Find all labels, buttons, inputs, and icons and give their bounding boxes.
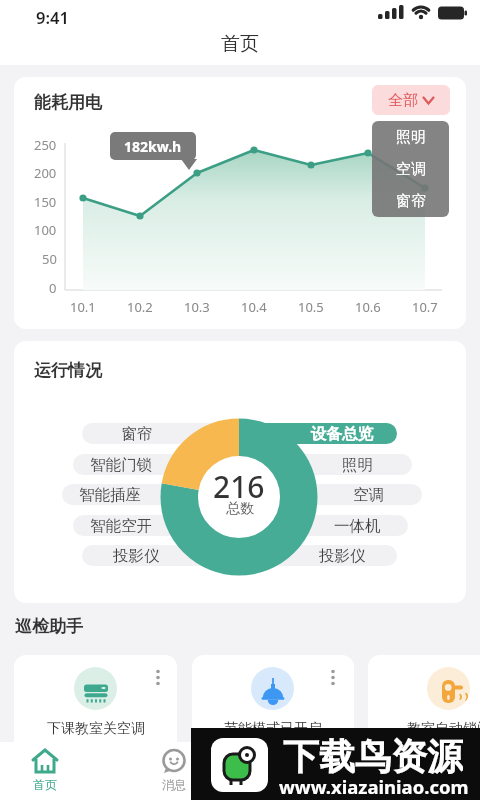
staticText: 设备总览 (311, 424, 373, 444)
button[interactable]: 节能模式已开启 (192, 655, 354, 755)
staticText: 智能插座 (79, 485, 141, 505)
button[interactable] (236, 545, 397, 566)
button[interactable] (82, 545, 242, 566)
staticText: 100 (34, 221, 57, 237)
button[interactable] (73, 515, 242, 536)
staticText: 消息 (162, 777, 186, 792)
staticText: 投影仪 (113, 546, 160, 566)
staticText: 全部 (388, 91, 418, 110)
button[interactable] (236, 515, 408, 536)
staticText: 窗帘 (396, 192, 426, 211)
button[interactable]: 消息 (146, 744, 202, 798)
button[interactable]: 下课教室关空调 (14, 655, 177, 755)
staticText: 运行情况 (34, 360, 102, 381)
button[interactable]: 全部 (372, 85, 450, 115)
button[interactable] (62, 484, 242, 505)
button[interactable] (236, 454, 412, 475)
staticText: 下载鸟资源 (283, 734, 463, 776)
button[interactable]: 窗帘 (372, 185, 449, 217)
staticText: 能耗用电 (34, 92, 102, 113)
button[interactable]: 空调 (372, 153, 449, 185)
button[interactable]: 首页 (17, 744, 73, 798)
staticText: 照明 (396, 128, 426, 147)
staticText: 节能模式已开启 (224, 720, 322, 738)
staticText: 50 (42, 250, 57, 266)
staticText: 10.5 (298, 298, 324, 316)
button[interactable] (82, 423, 242, 444)
staticText: 照明 (342, 455, 373, 475)
staticText: 巡检助手 (15, 616, 83, 637)
staticText: 投影仪 (319, 546, 366, 566)
staticText: 智能门锁 (90, 455, 152, 475)
staticText: 空调 (396, 160, 426, 179)
staticText: 10.6 (355, 298, 381, 316)
staticText: 一体机 (334, 516, 381, 536)
staticText: 总数 (226, 500, 254, 518)
staticText: 10.4 (241, 298, 267, 316)
button[interactable]: 教室自动锁门 (368, 655, 480, 755)
staticText: 空调 (353, 485, 384, 505)
staticText: 智能空开 (90, 516, 152, 536)
staticText: 教室自动锁门 (407, 720, 480, 738)
staticText: 0 (49, 279, 57, 295)
staticText: 150 (34, 193, 57, 209)
staticText: 216 (213, 466, 265, 507)
staticText: 182kw.h (124, 137, 182, 156)
staticText: 首页 (221, 32, 259, 56)
staticText: 250 (34, 136, 57, 152)
button[interactable] (73, 454, 242, 475)
staticText: 窗帘 (121, 424, 152, 444)
button[interactable] (236, 484, 422, 505)
staticText: 下课教室关空调 (47, 720, 145, 738)
staticText: 首页 (33, 777, 57, 792)
staticText: www.xiazainiao.com (279, 774, 469, 798)
staticText: 9:41 (36, 6, 69, 26)
staticText: 10.7 (412, 298, 438, 316)
staticText: 10.3 (184, 298, 210, 316)
staticText: 10.1 (70, 298, 96, 316)
button[interactable] (236, 423, 397, 444)
button[interactable]: 照明 (372, 121, 449, 153)
staticText: 10.2 (127, 298, 153, 316)
staticText: 200 (34, 164, 57, 180)
